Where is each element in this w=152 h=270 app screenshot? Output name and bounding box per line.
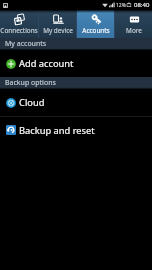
- staticText: My accounts: [5, 39, 47, 49]
- button[interactable]: Backup and reset: [0, 117, 152, 143]
- staticText: Accounts: [82, 26, 110, 35]
- button[interactable]: Add account: [0, 50, 152, 77]
- button[interactable]: Cloud: [0, 89, 152, 116]
- staticText: Backup and reset: [19, 124, 95, 137]
- button[interactable]: More: [115, 10, 152, 38]
- staticText: 12%: [116, 2, 126, 9]
- staticText: Cloud: [19, 96, 45, 109]
- staticText: Connections: [0, 26, 38, 35]
- button[interactable]: Connections: [0, 10, 38, 38]
- staticText: More: [126, 26, 142, 35]
- button[interactable]: My device: [39, 10, 76, 38]
- staticText: Add account: [19, 57, 74, 70]
- staticText: Backup options: [5, 78, 56, 88]
- staticText: My device: [43, 26, 73, 35]
- button[interactable]: Accounts: [77, 10, 114, 38]
- staticText: 08:40: [134, 1, 150, 9]
